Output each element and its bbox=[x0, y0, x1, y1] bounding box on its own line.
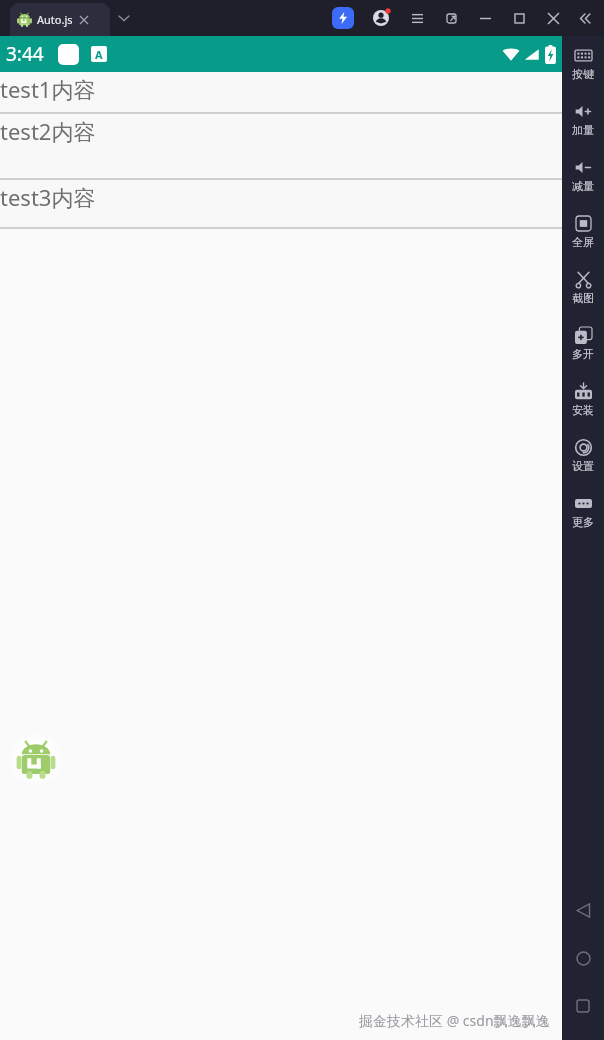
button[interactable]: test1内容 bbox=[0, 72, 562, 112]
button[interactable]: Tab list bbox=[112, 6, 136, 30]
staticText: 3:44 bbox=[6, 41, 44, 67]
button[interactable]: Home bbox=[562, 934, 604, 982]
staticText: Auto.js bbox=[37, 12, 73, 27]
button[interactable]: 多开 bbox=[562, 316, 604, 372]
button[interactable]: test3内容 bbox=[0, 180, 562, 227]
staticText: 加量 bbox=[572, 123, 594, 137]
button[interactable]: test2内容 bbox=[0, 114, 562, 178]
staticText: 截图 bbox=[572, 291, 594, 305]
button[interactable]: Menu bbox=[406, 7, 428, 29]
button[interactable]: 截图 bbox=[562, 260, 604, 316]
staticText: 按键 bbox=[572, 67, 594, 81]
button[interactable]: 全屏 bbox=[562, 204, 604, 260]
staticText: 安装 bbox=[572, 403, 594, 417]
staticText: 更多 bbox=[572, 515, 594, 529]
button[interactable]: Back bbox=[562, 886, 604, 934]
button[interactable]: 安装 bbox=[562, 372, 604, 428]
staticText: 设置 bbox=[572, 459, 594, 473]
button[interactable]: Recents bbox=[562, 982, 604, 1030]
staticText: test1内容 bbox=[0, 74, 96, 104]
button[interactable]: 按键 bbox=[562, 36, 604, 92]
staticText: 掘金技术社区 @ csdn飘逸飘逸 bbox=[359, 1011, 550, 1030]
button[interactable]: 设置 bbox=[562, 428, 604, 484]
staticText: 全屏 bbox=[572, 235, 594, 249]
staticText: A bbox=[95, 47, 103, 62]
button[interactable]: Collapse bbox=[574, 7, 596, 29]
button[interactable]: Account bbox=[368, 5, 394, 31]
button[interactable]: Minimize bbox=[474, 7, 496, 29]
button[interactable]: Auto.js floating button bbox=[6, 729, 66, 789]
staticText: test2内容 bbox=[0, 116, 96, 146]
button[interactable]: 加量 bbox=[562, 92, 604, 148]
staticText: test3内容 bbox=[0, 182, 96, 212]
button[interactable]: Close bbox=[542, 7, 564, 29]
staticText: 减量 bbox=[572, 179, 594, 193]
button[interactable]: Close tab bbox=[77, 13, 90, 26]
button[interactable]: Restore bbox=[440, 7, 462, 29]
button[interactable]: Auto.js bbox=[10, 3, 110, 36]
button[interactable]: Maximize bbox=[508, 7, 530, 29]
button[interactable]: 更多 bbox=[562, 484, 604, 540]
staticText: 多开 bbox=[572, 347, 594, 361]
button[interactable]: Boost bbox=[332, 7, 354, 29]
button[interactable]: 减量 bbox=[562, 148, 604, 204]
